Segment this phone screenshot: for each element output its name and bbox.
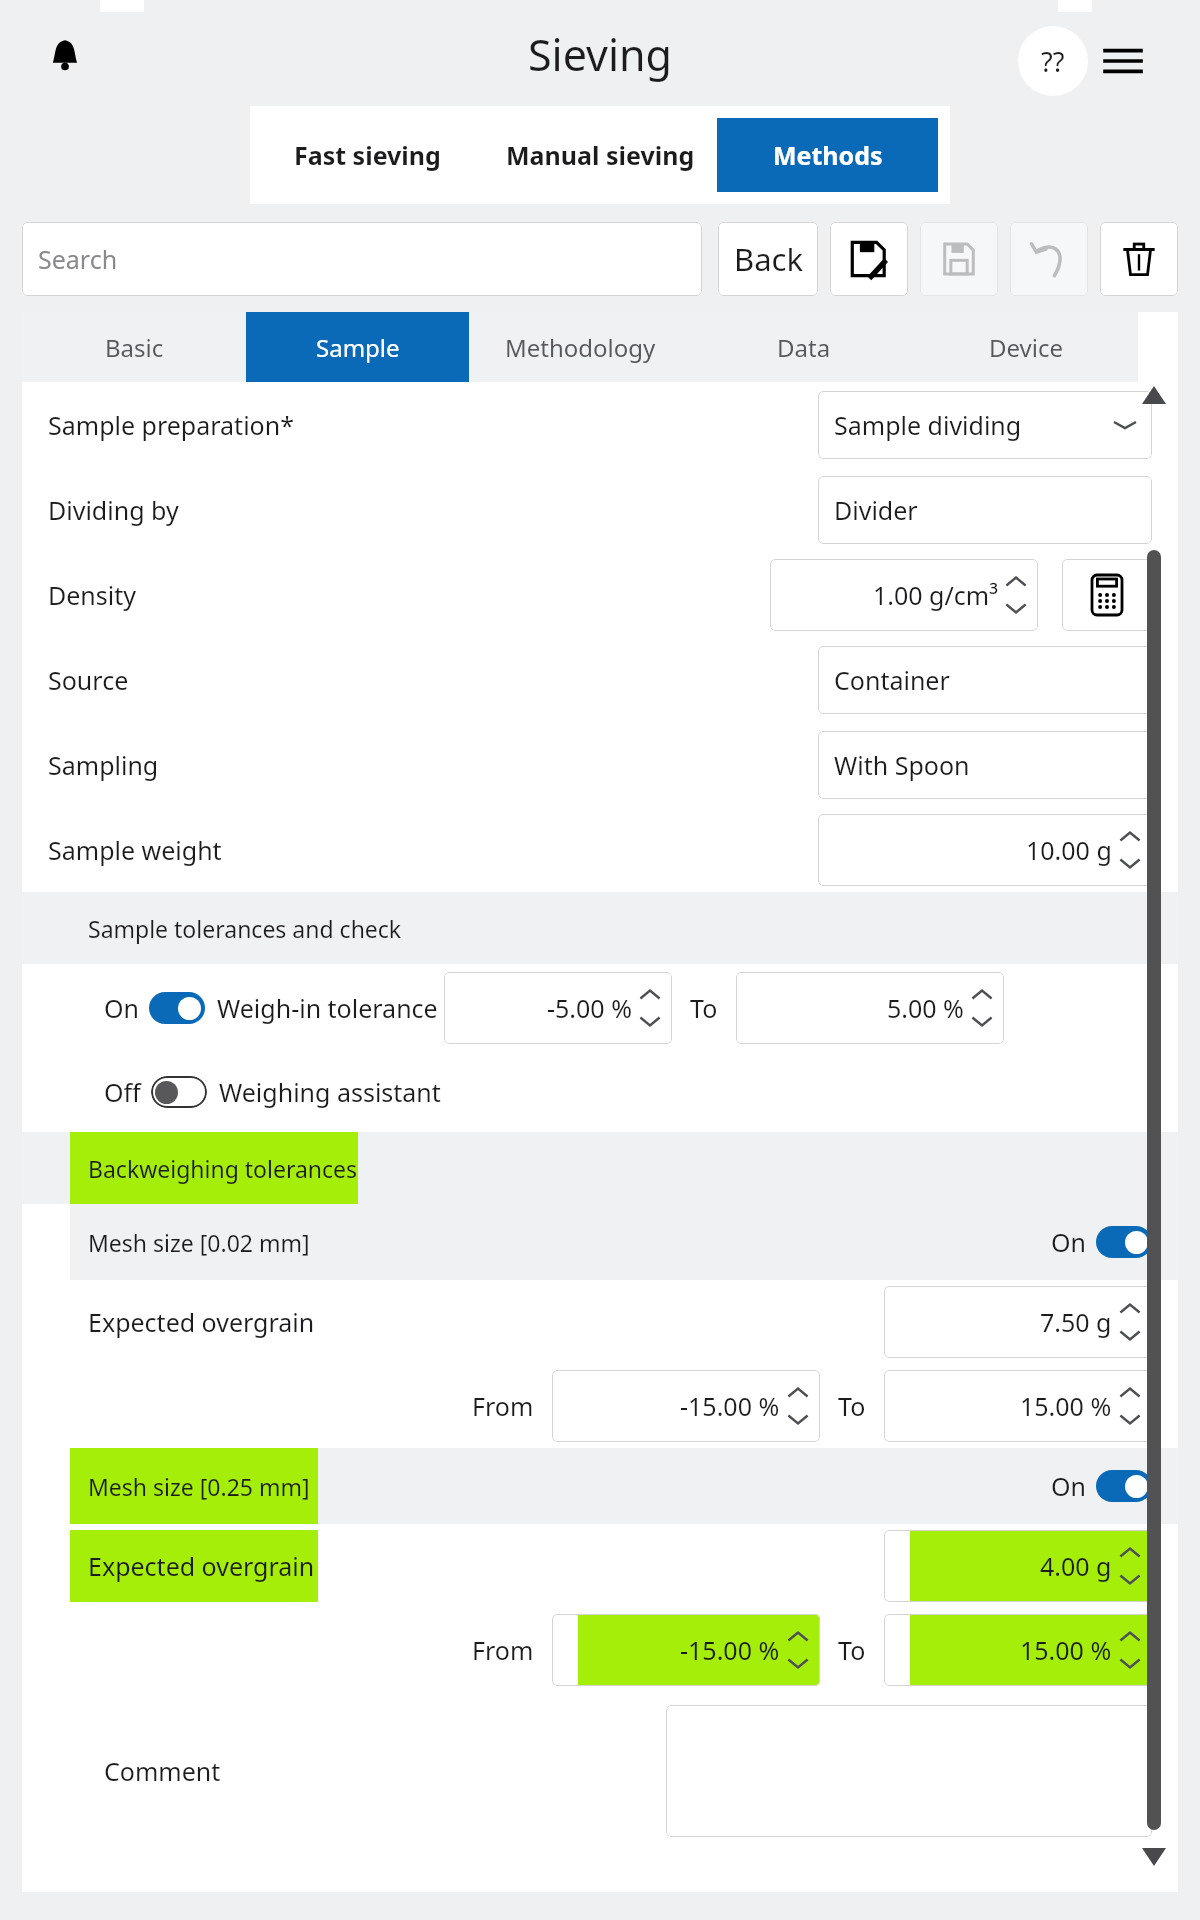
button[interactable]: Container: [818, 646, 1152, 714]
staticText: On: [1051, 1469, 1086, 1503]
button[interactable]: Help: [1018, 26, 1088, 96]
button[interactable]: Methods: [717, 118, 938, 192]
staticText: Weighing assistant: [219, 1075, 441, 1109]
staticText: Mesh size [0.02 mm]: [88, 1227, 310, 1258]
button[interactable]: Manual sieving: [484, 106, 717, 204]
staticText: To: [838, 1389, 866, 1423]
staticText: With Spoon: [834, 748, 1136, 782]
staticText: Off: [104, 1075, 141, 1109]
staticText: Expected overgrain: [88, 1549, 315, 1583]
button[interactable]: 10.00 g: [818, 814, 1152, 886]
staticText: Container: [834, 663, 1136, 697]
button[interactable]: On: [149, 992, 205, 1024]
button[interactable]: Data: [692, 312, 915, 382]
button[interactable]: On: [1051, 1469, 1152, 1503]
button[interactable]: Undo: [1010, 222, 1088, 296]
button[interactable]: 4.00 g: [884, 1530, 1152, 1602]
staticText: Search: [38, 242, 118, 276]
button[interactable]: With Spoon: [818, 731, 1152, 799]
staticText: 15.00 %: [1020, 1389, 1112, 1423]
staticText: Sample weight: [48, 833, 818, 867]
staticText: Divider: [834, 493, 1136, 527]
staticText: Mesh size [0.25 mm]: [88, 1471, 310, 1502]
button[interactable]: On: [1051, 1225, 1152, 1259]
button[interactable]: Search: [22, 222, 702, 296]
button[interactable]: Menu: [1098, 36, 1148, 86]
staticText: ??: [1041, 43, 1065, 80]
staticText: To: [838, 1633, 866, 1667]
staticText: 10.00 g: [1026, 833, 1112, 867]
staticText: Data: [777, 331, 831, 364]
staticText: Sample preparation*: [48, 408, 818, 442]
staticText: 1.00 g/cm³: [873, 578, 998, 612]
button[interactable]: Methodology: [469, 312, 692, 382]
staticText: Comment: [104, 1754, 221, 1788]
staticText: Manual sieving: [506, 138, 695, 172]
button[interactable]: Notifications: [40, 30, 90, 80]
button[interactable]: 15.00 %: [884, 1614, 1152, 1686]
staticText: On: [1051, 1225, 1086, 1259]
staticText: Dividing by: [48, 493, 818, 527]
staticText: From: [472, 1389, 534, 1423]
staticText: Expected overgrain: [88, 1305, 315, 1339]
button[interactable]: Off: [151, 1076, 207, 1108]
staticText: Back: [734, 238, 803, 280]
staticText: -15.00 %: [680, 1633, 780, 1667]
staticText: 4.00 g: [1040, 1549, 1112, 1583]
button[interactable]: Divider: [818, 476, 1152, 544]
button[interactable]: -15.00 %: [552, 1370, 820, 1442]
staticText: 7.50 g: [1040, 1305, 1112, 1339]
button[interactable]: Device: [915, 312, 1138, 382]
staticText: Sample: [316, 331, 400, 364]
staticText: -5.00 %: [547, 991, 632, 1025]
button[interactable]: Sample dividing: [818, 391, 1152, 459]
button[interactable]: Sample: [246, 312, 469, 382]
staticText: Basic: [105, 331, 164, 364]
button[interactable]: -15.00 %: [552, 1614, 820, 1686]
staticText: Sampling: [48, 748, 818, 782]
staticText: Methods: [773, 138, 883, 172]
button[interactable]: 1.00 g/cm³: [770, 559, 1038, 631]
button[interactable]: 7.50 g: [884, 1286, 1152, 1358]
button[interactable]: On: [1096, 1470, 1152, 1502]
button[interactable]: [666, 1705, 1152, 1837]
staticText: 5.00 %: [887, 991, 964, 1025]
button[interactable]: Fast sieving: [250, 106, 484, 204]
staticText: Device: [989, 331, 1064, 364]
staticText: Weigh-in tolerance: [217, 991, 438, 1025]
staticText: Density: [48, 578, 770, 612]
button[interactable]: Off: [104, 1075, 441, 1109]
staticText: 15.00 %: [1020, 1633, 1112, 1667]
staticText: Fast sieving: [294, 138, 441, 172]
button[interactable]: Save as: [830, 222, 908, 296]
staticText: Source: [48, 663, 818, 697]
staticText: Sieving: [528, 25, 673, 84]
button[interactable]: Save: [920, 222, 998, 296]
staticText: On: [104, 991, 139, 1025]
button[interactable]: On: [104, 991, 438, 1025]
button[interactable]: Calculator: [1062, 559, 1152, 631]
button[interactable]: Basic: [22, 312, 246, 382]
staticText: To: [690, 991, 718, 1025]
button[interactable]: 15.00 %: [884, 1370, 1152, 1442]
staticText: From: [472, 1633, 534, 1667]
button[interactable]: -5.00 %: [444, 972, 672, 1044]
button[interactable]: Delete: [1100, 222, 1178, 296]
staticText: Methodology: [505, 331, 656, 364]
staticText: Sample tolerances and check: [88, 913, 402, 944]
button[interactable]: On: [1096, 1226, 1152, 1258]
staticText: Backweighing tolerances: [88, 1153, 358, 1184]
staticText: -15.00 %: [680, 1389, 780, 1423]
button[interactable]: Back: [718, 222, 818, 296]
staticText: Sample dividing: [834, 408, 1114, 442]
button[interactable]: 5.00 %: [736, 972, 1004, 1044]
